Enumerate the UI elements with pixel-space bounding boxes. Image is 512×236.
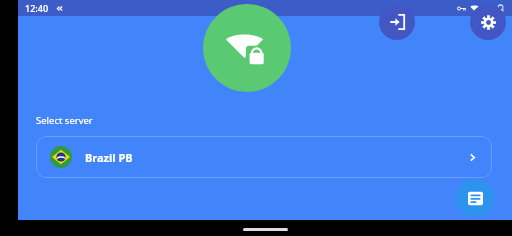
button[interactable]: Connect VPN: [203, 4, 291, 92]
button[interactable]: Settings: [470, 4, 506, 40]
staticText: 12:40: [25, 2, 49, 14]
button[interactable]: Brazil PB: [36, 136, 492, 178]
button[interactable]: Logs: [456, 179, 494, 217]
button[interactable]: Login: [379, 4, 415, 40]
staticText: Select server: [36, 114, 93, 127]
staticText: Brazil PB: [85, 150, 133, 165]
